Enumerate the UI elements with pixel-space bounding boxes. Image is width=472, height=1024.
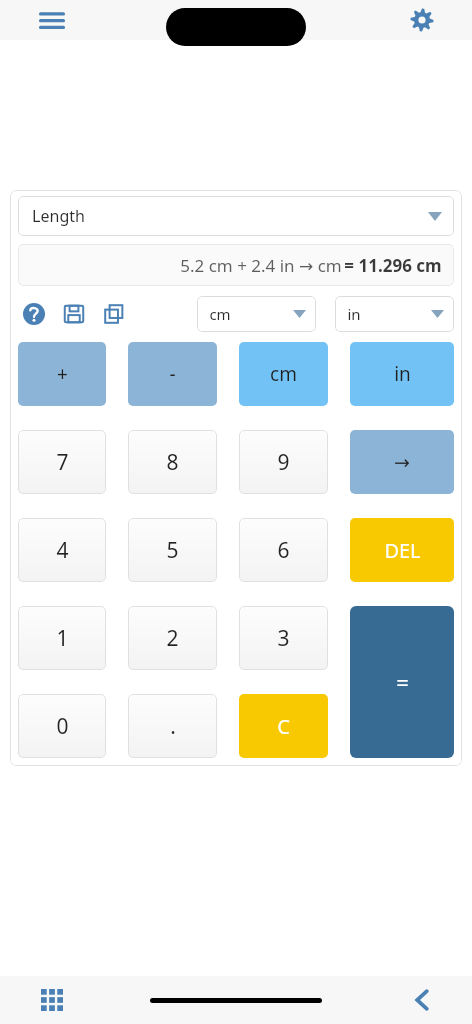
button[interactable]: C xyxy=(239,694,328,758)
button[interactable]: Length xyxy=(18,196,454,236)
staticText: Length xyxy=(32,205,85,227)
staticText: 2 xyxy=(166,624,179,653)
staticText: in xyxy=(347,304,361,324)
button[interactable]: Settings xyxy=(400,0,444,40)
staticText: 5.2 cm + 2.4 in → cm xyxy=(178,254,344,277)
button[interactable]: 1 xyxy=(18,606,106,670)
button[interactable]: Help xyxy=(18,298,50,330)
staticText: 1 xyxy=(56,624,69,653)
staticText: + xyxy=(57,361,68,387)
staticText: in xyxy=(394,361,411,387)
staticText: C xyxy=(277,713,290,740)
staticText: 6 xyxy=(277,536,290,565)
button[interactable]: 4 xyxy=(18,518,106,582)
staticText: DEL xyxy=(384,537,421,564)
staticText: . xyxy=(170,712,176,741)
button[interactable]: 5.2 cm + 2.4 in → cm xyxy=(18,244,454,286)
button[interactable]: 3 xyxy=(239,606,328,670)
button[interactable]: Menu xyxy=(30,0,74,40)
button[interactable]: cm xyxy=(239,342,328,406)
staticText: 5 xyxy=(166,536,179,565)
button[interactable]: 0 xyxy=(18,694,106,758)
staticText: cm xyxy=(270,361,297,387)
button[interactable]: Save xyxy=(58,298,90,330)
button[interactable]: 5 xyxy=(128,518,217,582)
button[interactable]: Back xyxy=(402,980,442,1020)
staticText: 9 xyxy=(277,448,290,477)
staticText: 8 xyxy=(166,448,179,477)
button[interactable]: 8 xyxy=(128,430,217,494)
button[interactable]: 9 xyxy=(239,430,328,494)
button[interactable]: cm xyxy=(197,296,316,332)
button[interactable]: Copy xyxy=(98,298,130,330)
staticText: cm xyxy=(209,304,231,324)
button[interactable]: + xyxy=(18,342,106,406)
button[interactable]: 6 xyxy=(239,518,328,582)
staticText: 3 xyxy=(277,624,290,653)
staticText: = xyxy=(396,667,409,697)
button[interactable]: Apps xyxy=(32,980,72,1020)
button[interactable]: DEL xyxy=(350,518,454,582)
button[interactable]: in xyxy=(335,296,454,332)
staticText: 4 xyxy=(56,536,69,565)
button[interactable]: 7 xyxy=(18,430,106,494)
staticText: = 11.296 cm xyxy=(344,254,442,277)
button[interactable]: → xyxy=(350,430,454,494)
button[interactable]: - xyxy=(128,342,217,406)
staticText: 7 xyxy=(56,448,69,477)
staticText: - xyxy=(169,361,176,387)
staticText: → xyxy=(394,451,410,473)
button[interactable]: 2 xyxy=(128,606,217,670)
button[interactable]: = xyxy=(350,606,454,758)
button[interactable]: . xyxy=(128,694,217,758)
button[interactable]: in xyxy=(350,342,454,406)
staticText: 0 xyxy=(56,712,69,741)
